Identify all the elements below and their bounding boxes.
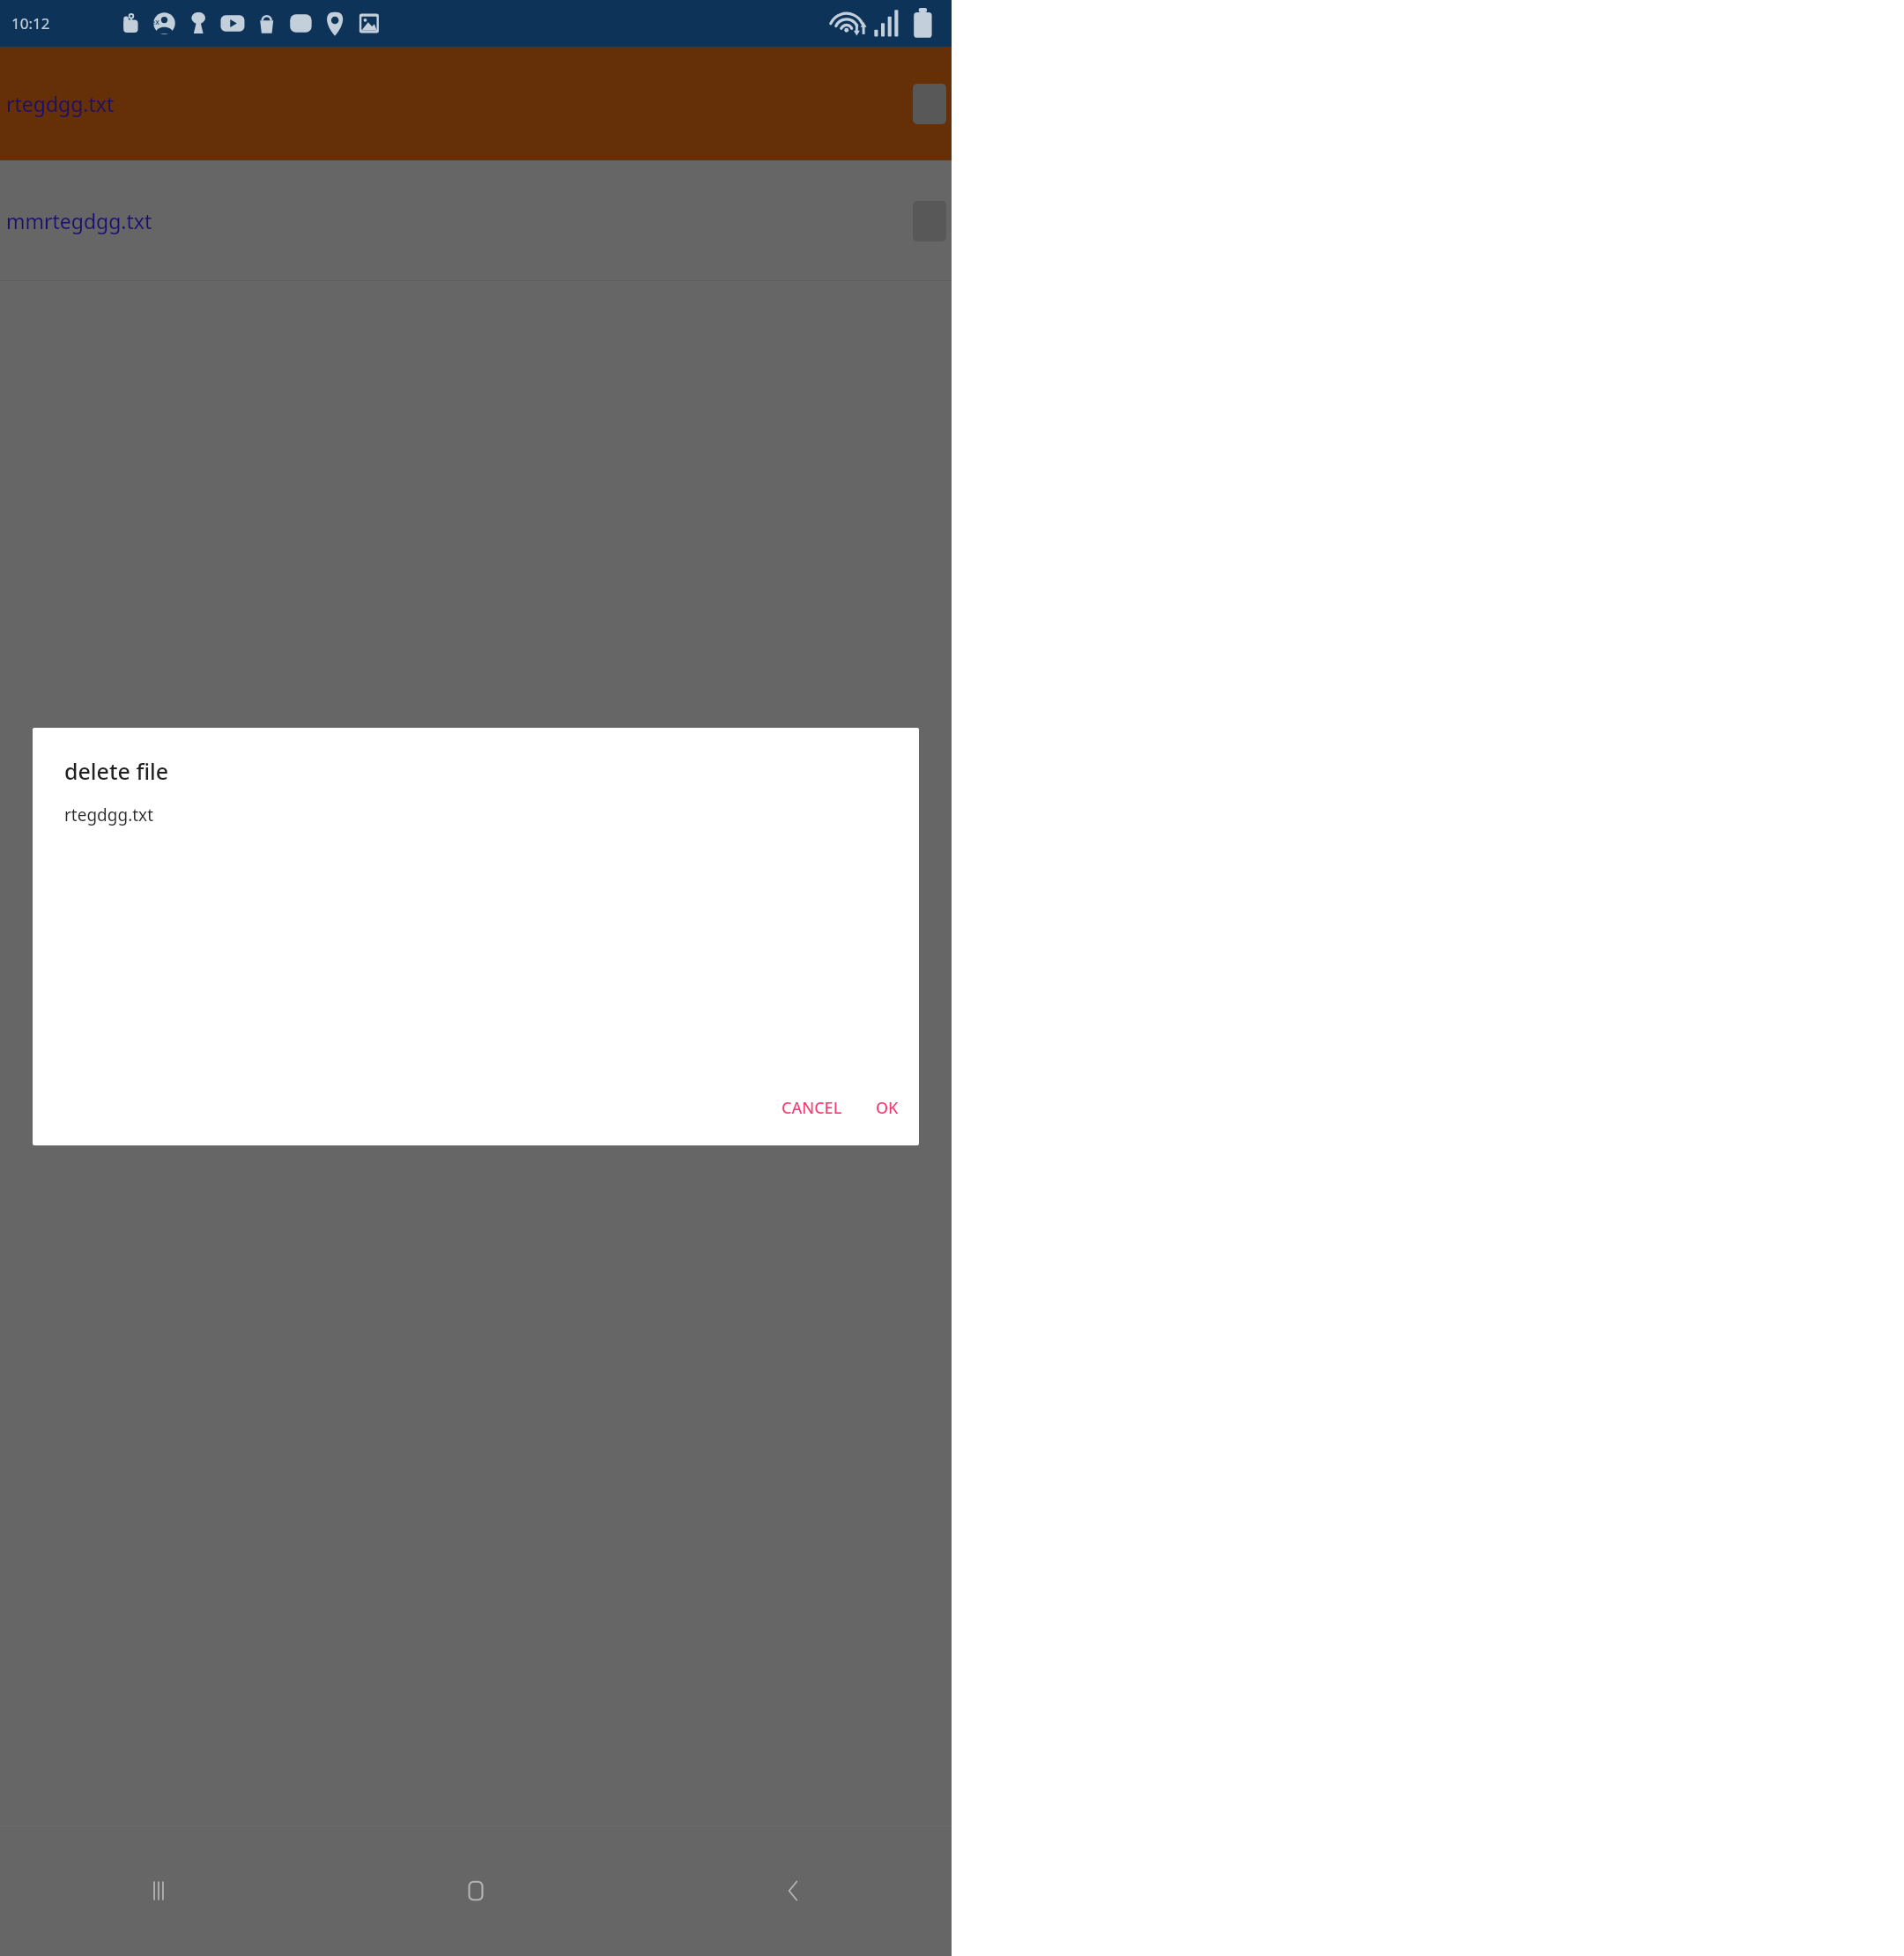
staticText: delete file bbox=[64, 756, 169, 786]
staticText: rtegdgg.txt bbox=[64, 804, 154, 826]
button[interactable]: mmrtegdgg.txt bbox=[0, 160, 952, 281]
staticText: OK bbox=[876, 1097, 899, 1119]
button[interactable]: Options for rtegdgg.txt bbox=[913, 84, 946, 124]
button[interactable]: Home bbox=[317, 1826, 634, 1956]
staticText: DeX bbox=[147, 19, 159, 27]
staticText: rtegdgg.txt bbox=[6, 90, 913, 117]
button[interactable]: Recent apps bbox=[0, 1826, 317, 1956]
staticText: mmrtegdgg.txt bbox=[6, 207, 913, 234]
button[interactable]: OK bbox=[867, 1090, 908, 1126]
staticText: CANCEL bbox=[782, 1097, 842, 1119]
button[interactable]: CANCEL bbox=[773, 1090, 851, 1126]
staticText: 10:12 bbox=[11, 13, 50, 33]
button[interactable]: rtegdgg.txt bbox=[0, 47, 952, 160]
